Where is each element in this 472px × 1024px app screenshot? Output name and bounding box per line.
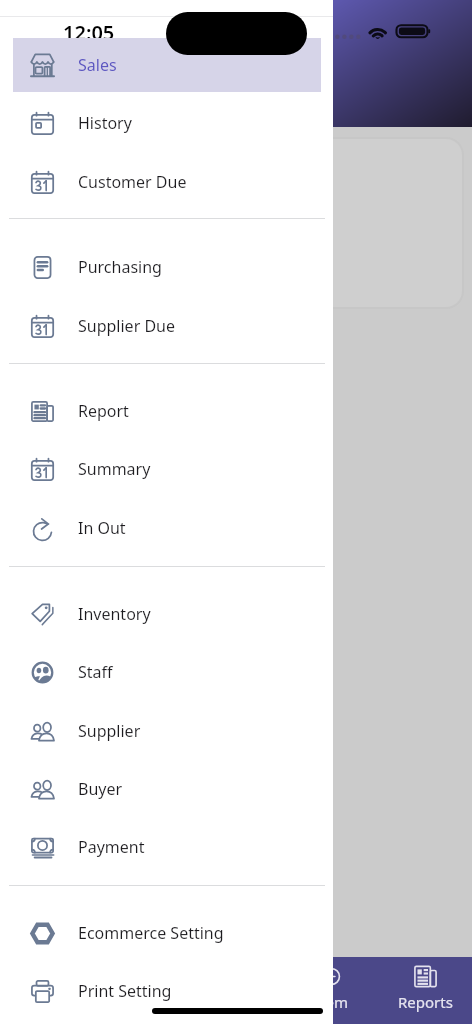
button[interactable]: Supplier [13, 704, 321, 758]
staticText: Print Setting [78, 980, 172, 1002]
button[interactable]: Purchasing [13, 240, 321, 294]
button[interactable]: History [13, 96, 321, 150]
staticText: Inventory [78, 603, 151, 625]
button[interactable]: Sales [13, 38, 321, 92]
staticText: Sales [219, 992, 256, 1012]
staticText: Supplier Due [78, 315, 175, 337]
button[interactable]: Home [0, 957, 95, 1024]
button[interactable]: Summary [13, 442, 321, 496]
button[interactable]: Sales [190, 957, 284, 1024]
button[interactable]: Customer Due [13, 155, 321, 209]
button[interactable]: Stock [95, 957, 190, 1024]
button[interactable]: Buyer [13, 762, 321, 816]
button[interactable]: Ecommerce Setting [13, 906, 321, 960]
button[interactable]: Supplier Due [13, 299, 321, 353]
button[interactable]: Payment [13, 820, 321, 874]
button[interactable]: Reports [378, 957, 472, 1024]
button[interactable]: Inventory [13, 587, 321, 641]
staticText: Item [315, 992, 348, 1012]
staticText: Home [26, 992, 69, 1012]
staticText: Staff [78, 661, 113, 683]
button[interactable]: Item [284, 957, 378, 1024]
staticText: Sales [78, 54, 117, 76]
staticText: Report [78, 400, 129, 422]
staticText: Buyer [78, 778, 123, 800]
staticText: Payment [78, 836, 145, 858]
button[interactable]: Close navigation drawer [333, 0, 472, 1024]
button[interactable]: Report [13, 384, 321, 438]
staticText: Purchasing [78, 256, 162, 278]
staticText: History [78, 112, 132, 134]
staticText: In Out [78, 517, 126, 539]
staticText: 12:05 [63, 19, 115, 46]
staticText: Reports [398, 992, 453, 1012]
button[interactable]: In Out [13, 501, 321, 555]
staticText: Stock [124, 992, 162, 1012]
staticText: Ecommerce Setting [78, 922, 224, 944]
button[interactable]: Print Setting [13, 964, 321, 1018]
staticText: Supplier [78, 720, 141, 742]
button[interactable]: Staff [13, 645, 321, 699]
staticText: Summary [78, 458, 151, 480]
staticText: Customer Due [78, 171, 187, 193]
